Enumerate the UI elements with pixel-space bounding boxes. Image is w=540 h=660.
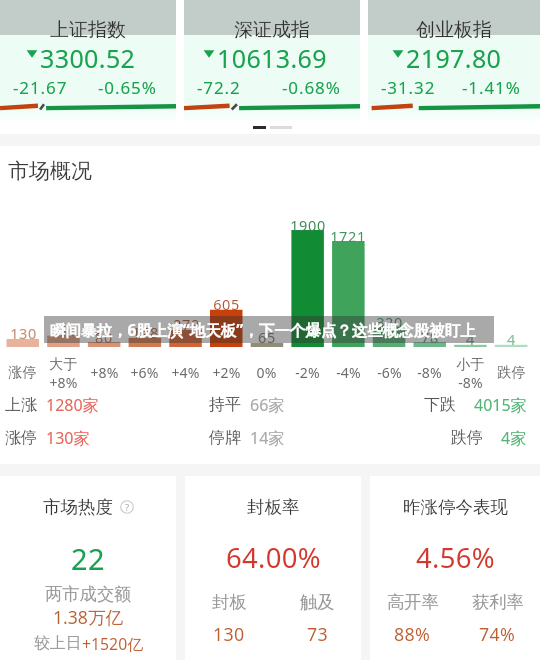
staticText: 涨停 <box>5 428 37 448</box>
staticText: 74% <box>479 622 516 646</box>
staticText: 66家 <box>250 394 285 416</box>
staticText: -0.65% <box>98 76 157 99</box>
button[interactable]: 创业板指 <box>368 0 540 124</box>
staticText: 64.00% <box>226 539 321 576</box>
staticText: -1.41% <box>462 76 521 99</box>
staticText: 78 <box>421 327 439 347</box>
staticText: 深证成指 <box>234 18 310 42</box>
staticText: 持平 <box>209 395 241 415</box>
staticText: 创业板指 <box>416 18 492 42</box>
staticText: 22 <box>71 539 105 578</box>
staticText: 大于 +8% <box>49 356 78 389</box>
staticText: 4 <box>507 329 516 349</box>
staticText: 10613.69 <box>217 41 328 75</box>
staticText: -72.2 <box>197 76 241 99</box>
staticText: 昨涨停今表现 <box>403 496 508 518</box>
staticText: 73 <box>307 622 328 646</box>
staticText: 3300.52 <box>40 41 136 75</box>
staticText: 2197.80 <box>406 41 502 75</box>
staticText: 4家 <box>501 427 527 449</box>
staticText: -8% <box>417 363 442 382</box>
staticText: 130 <box>10 323 37 343</box>
staticText: 279 <box>173 314 200 334</box>
staticText: 1280家 <box>46 394 99 416</box>
staticText: 148 <box>132 322 159 342</box>
staticText: -31.32 <box>381 76 436 99</box>
staticText: 605 <box>213 294 240 314</box>
staticText: 88% <box>394 622 431 646</box>
button[interactable]: 帮助 <box>120 500 134 514</box>
staticText: 4 <box>466 329 475 349</box>
staticText: 0% <box>256 363 277 382</box>
staticText: 涨停 <box>8 364 37 382</box>
button[interactable]: 上证指数 <box>0 0 176 124</box>
staticText: 封板率 <box>247 496 300 518</box>
staticText: 4.56% <box>416 539 495 576</box>
staticText: +1520亿 <box>82 633 143 655</box>
staticText: 1.38万亿 <box>53 605 124 629</box>
staticText: 市场热度 <box>43 496 113 518</box>
staticText: 触及 <box>300 591 335 613</box>
staticText: 4015家 <box>474 394 527 416</box>
staticText: +8% <box>90 363 119 382</box>
staticText: -6% <box>377 363 402 382</box>
staticText: -2% <box>295 363 320 382</box>
staticText: 封板 <box>212 591 247 613</box>
staticText: +4% <box>171 363 200 382</box>
staticText: +6% <box>130 363 159 382</box>
staticText: 较上日 <box>34 633 82 653</box>
staticText: 获利率 <box>472 591 524 613</box>
staticText: -4% <box>336 363 361 382</box>
staticText: 停牌 <box>209 428 241 448</box>
button[interactable]: 昨涨停今表现 <box>370 476 540 660</box>
staticText: 上证指数 <box>50 18 126 42</box>
staticText: 65 <box>258 327 276 347</box>
staticText: 跌停 <box>497 364 526 382</box>
staticText: 320 <box>376 312 403 332</box>
staticText: 130家 <box>46 427 90 449</box>
staticText: 小于 -8% <box>456 356 485 389</box>
staticText: 130 <box>213 622 245 646</box>
button[interactable]: 市场热度 <box>0 476 176 660</box>
staticText: 市场概况 <box>8 158 92 184</box>
staticText: 186 <box>50 320 77 340</box>
staticText: +2% <box>212 363 241 382</box>
button[interactable]: 封板率 <box>185 476 361 660</box>
staticText: 1721 <box>330 226 366 246</box>
staticText: -0.68% <box>282 76 341 99</box>
staticText: 瞬间暴拉，6股上演“地天板”，下一个爆点？这些概念股被盯上 <box>50 319 476 340</box>
staticText: 跌停 <box>451 428 483 448</box>
staticText: 1900 <box>290 215 326 235</box>
button[interactable]: 瞬间暴拉，6股上演“地天板”，下一个爆点？这些概念股被盯上 <box>44 316 494 343</box>
staticText: 14家 <box>250 427 285 449</box>
staticText: ? <box>125 501 130 514</box>
staticText: -21.67 <box>13 76 68 99</box>
staticText: 下跌 <box>424 395 456 415</box>
staticText: 两市成交额 <box>45 583 132 605</box>
staticText: 上涨 <box>5 395 37 415</box>
button[interactable]: 深证成指 <box>184 0 360 124</box>
staticText: 80 <box>95 327 113 347</box>
staticText: 高开率 <box>387 591 439 613</box>
